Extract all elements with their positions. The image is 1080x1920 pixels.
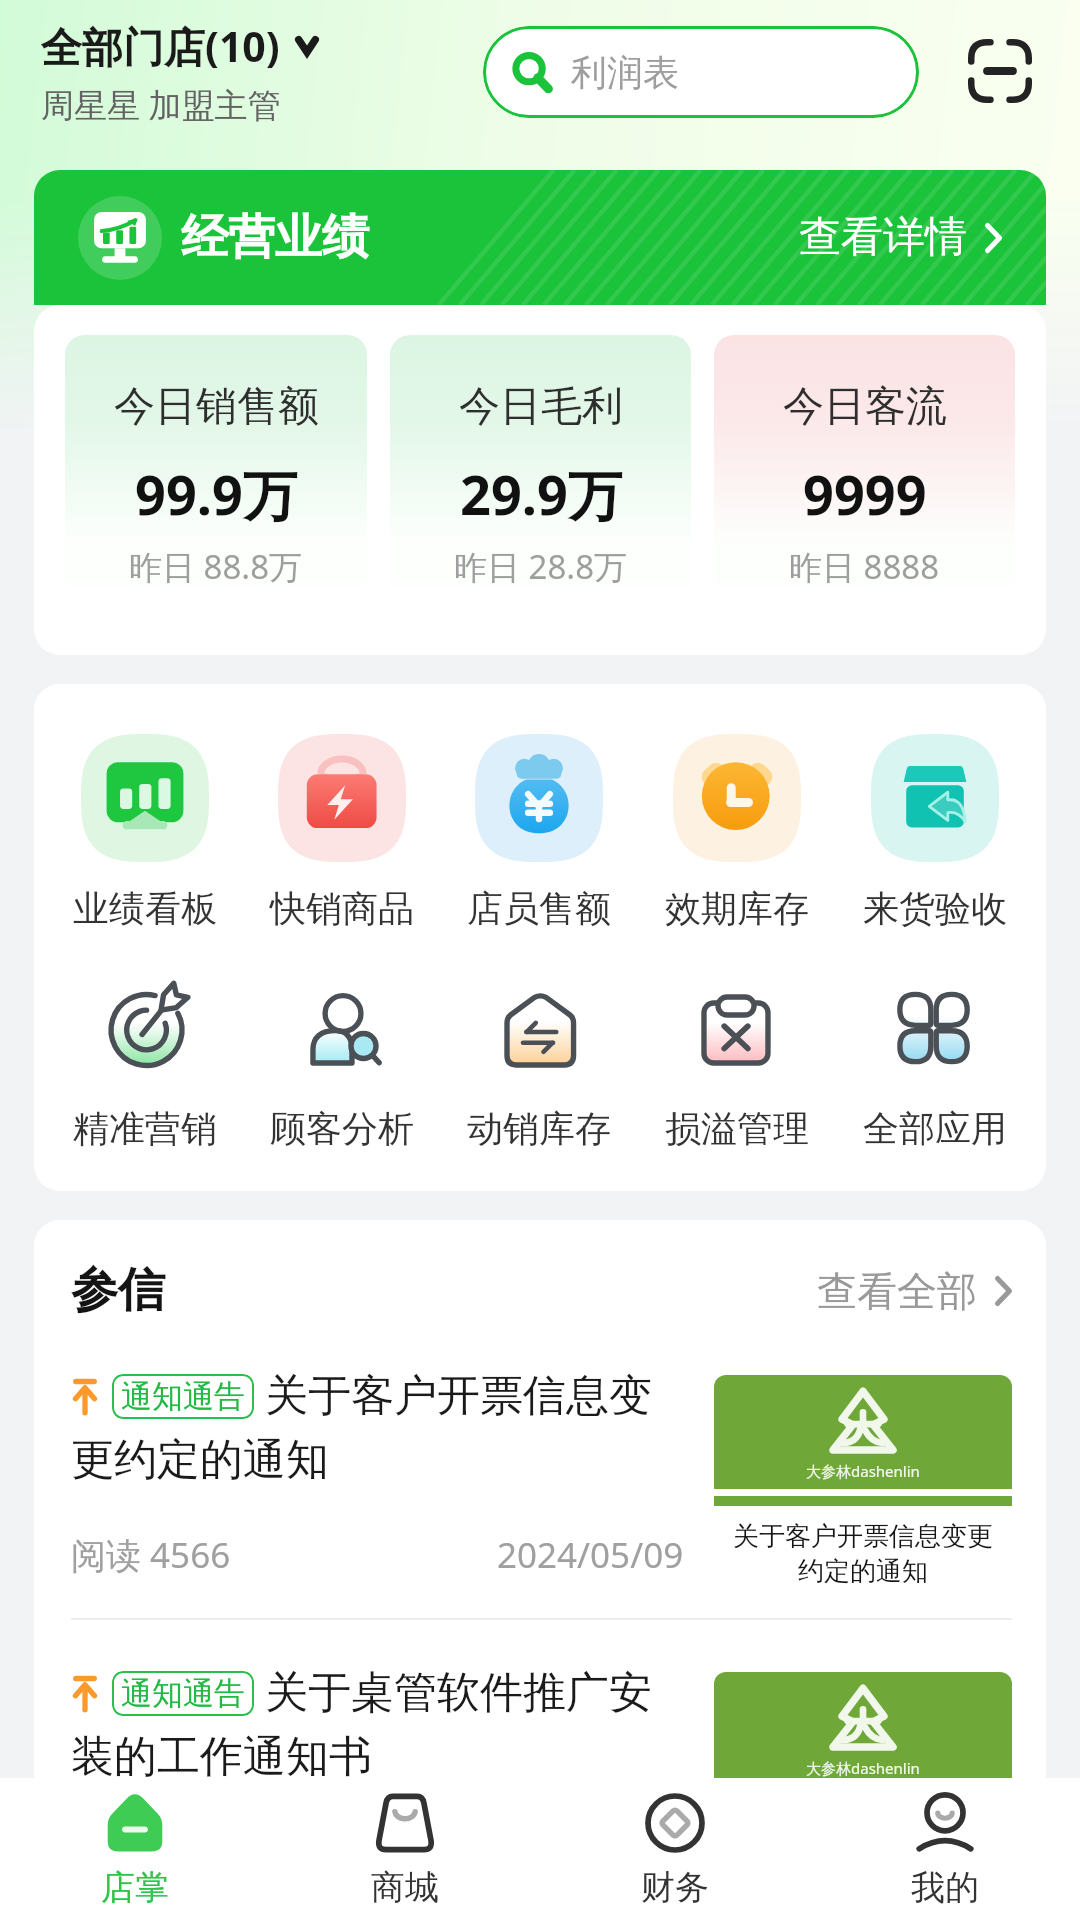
staticText: 昨日 88.8万: [129, 544, 303, 589]
staticText: 周星星 加盟主管: [41, 82, 281, 127]
staticText: 全部门店(10): [41, 18, 280, 74]
staticText: 通知通告: [121, 1674, 245, 1713]
button[interactable]: 效期库存: [638, 734, 836, 931]
staticText: 阅读 4566: [71, 1531, 231, 1579]
staticText: 装的工作通知书: [71, 1730, 372, 1784]
staticText: 来货验收: [863, 886, 1007, 931]
staticText: 快销商品: [270, 886, 414, 931]
staticText: 精准营销: [73, 1106, 217, 1151]
staticText: 大参林dashenlin: [806, 1461, 920, 1481]
staticText: 今日销售额: [114, 381, 319, 433]
staticText: 查看详情: [799, 211, 967, 264]
button[interactable]: 全部应用: [836, 966, 1034, 1151]
staticText: 昨日 28.8万: [454, 544, 628, 589]
button[interactable]: 全部门店(10): [41, 18, 319, 127]
staticText: 动销库存: [467, 1106, 611, 1151]
button[interactable]: 今日毛利: [390, 335, 691, 628]
button[interactable]: 店掌: [0, 1778, 270, 1920]
button[interactable]: 今日客流: [714, 335, 1015, 628]
staticText: 大参林dashenlin: [806, 1758, 920, 1778]
button[interactable]: 商城: [270, 1778, 540, 1920]
staticText: 2024/05/08: [497, 1828, 684, 1876]
button[interactable]: Scan QR code: [958, 29, 1042, 113]
button[interactable]: 通知通告: [71, 1369, 1012, 1618]
staticText: 关于桌管软件推广安装的 工作通知书: [714, 1817, 1012, 1885]
staticText: 商城: [371, 1866, 439, 1909]
staticText: 关于客户开票信息变更 约定的通知: [714, 1520, 1012, 1588]
staticText: 我的: [911, 1866, 979, 1909]
button[interactable]: 损溢管理: [638, 966, 836, 1151]
button[interactable]: 精准营销: [46, 966, 243, 1151]
staticText: 阅读 1234: [71, 1828, 231, 1876]
staticText: 全部应用: [863, 1106, 1007, 1151]
staticText: 参信: [71, 1261, 165, 1320]
staticText: 店员售额: [467, 886, 611, 931]
staticText: 利润表: [571, 50, 679, 95]
staticText: 经营业绩: [181, 208, 369, 267]
staticText: 效期库存: [665, 886, 809, 931]
button[interactable]: 利润表: [483, 26, 919, 118]
staticText: 损溢管理: [665, 1106, 809, 1151]
staticText: 顾客分析: [270, 1106, 414, 1151]
button[interactable]: 通知通告: [71, 1666, 1012, 1915]
button[interactable]: 查看详情: [799, 211, 1002, 264]
button[interactable]: 店员售额: [440, 734, 638, 931]
button[interactable]: 查看全部: [817, 1266, 1012, 1316]
button[interactable]: 快销商品: [243, 734, 440, 931]
staticText: 2024/05/09: [497, 1531, 684, 1579]
staticText: 今日毛利: [459, 381, 623, 433]
staticText: 9999: [803, 457, 927, 531]
staticText: 查看全部: [817, 1266, 977, 1316]
button[interactable]: 我的: [810, 1778, 1080, 1920]
staticText: 99.9万: [135, 457, 297, 531]
button[interactable]: 动销库存: [440, 966, 638, 1151]
staticText: 关于桌管软件推广安: [265, 1666, 652, 1720]
staticText: 财务: [641, 1866, 709, 1909]
button[interactable]: 来货验收: [836, 734, 1034, 931]
staticText: 更约定的通知: [71, 1433, 329, 1487]
staticText: 关于客户开票信息变: [265, 1369, 652, 1423]
button[interactable]: 业绩看板: [46, 734, 243, 931]
staticText: 业绩看板: [73, 886, 217, 931]
staticText: 通知通告: [121, 1377, 245, 1416]
staticText: 店掌: [101, 1866, 169, 1909]
button[interactable]: 财务: [540, 1778, 810, 1920]
button[interactable]: 顾客分析: [243, 966, 440, 1151]
staticText: 昨日 8888: [789, 544, 940, 589]
button[interactable]: 今日销售额: [65, 335, 367, 628]
staticText: 今日客流: [783, 381, 947, 433]
staticText: 29.9万: [460, 457, 622, 531]
